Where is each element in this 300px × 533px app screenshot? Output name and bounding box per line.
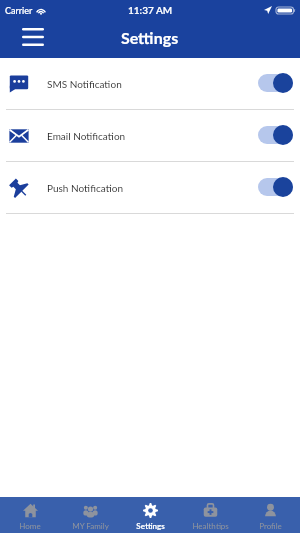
button[interactable]: Settings — [120, 497, 180, 533]
staticText: Settings — [136, 521, 165, 531]
button[interactable]: SMS Notification toggle — [258, 73, 293, 93]
button[interactable]: Menu — [18, 22, 48, 52]
button[interactable]: Push Notification — [0, 162, 300, 213]
button[interactable]: SMS Notification — [0, 58, 300, 109]
button[interactable]: Email Notification toggle — [258, 125, 293, 145]
button[interactable]: Profile — [240, 497, 300, 533]
staticText: MY Family — [72, 521, 109, 531]
button[interactable]: Push Notification toggle — [258, 177, 293, 197]
staticText: Profile — [259, 521, 282, 531]
button[interactable]: Home — [0, 497, 60, 533]
button[interactable]: MY Family — [60, 497, 120, 533]
staticText: Healthtips — [192, 521, 229, 531]
staticText: Home — [19, 521, 41, 531]
staticText: 11:37 AM — [128, 4, 173, 16]
staticText: Settings — [121, 28, 179, 47]
button[interactable]: Email Notification — [0, 110, 300, 161]
button[interactable]: Healthtips — [180, 497, 240, 533]
staticText: SMS Notification — [47, 78, 122, 90]
staticText: Email Notification — [47, 130, 126, 142]
staticText: Carrier — [5, 5, 33, 16]
staticText: Push Notification — [47, 182, 124, 194]
